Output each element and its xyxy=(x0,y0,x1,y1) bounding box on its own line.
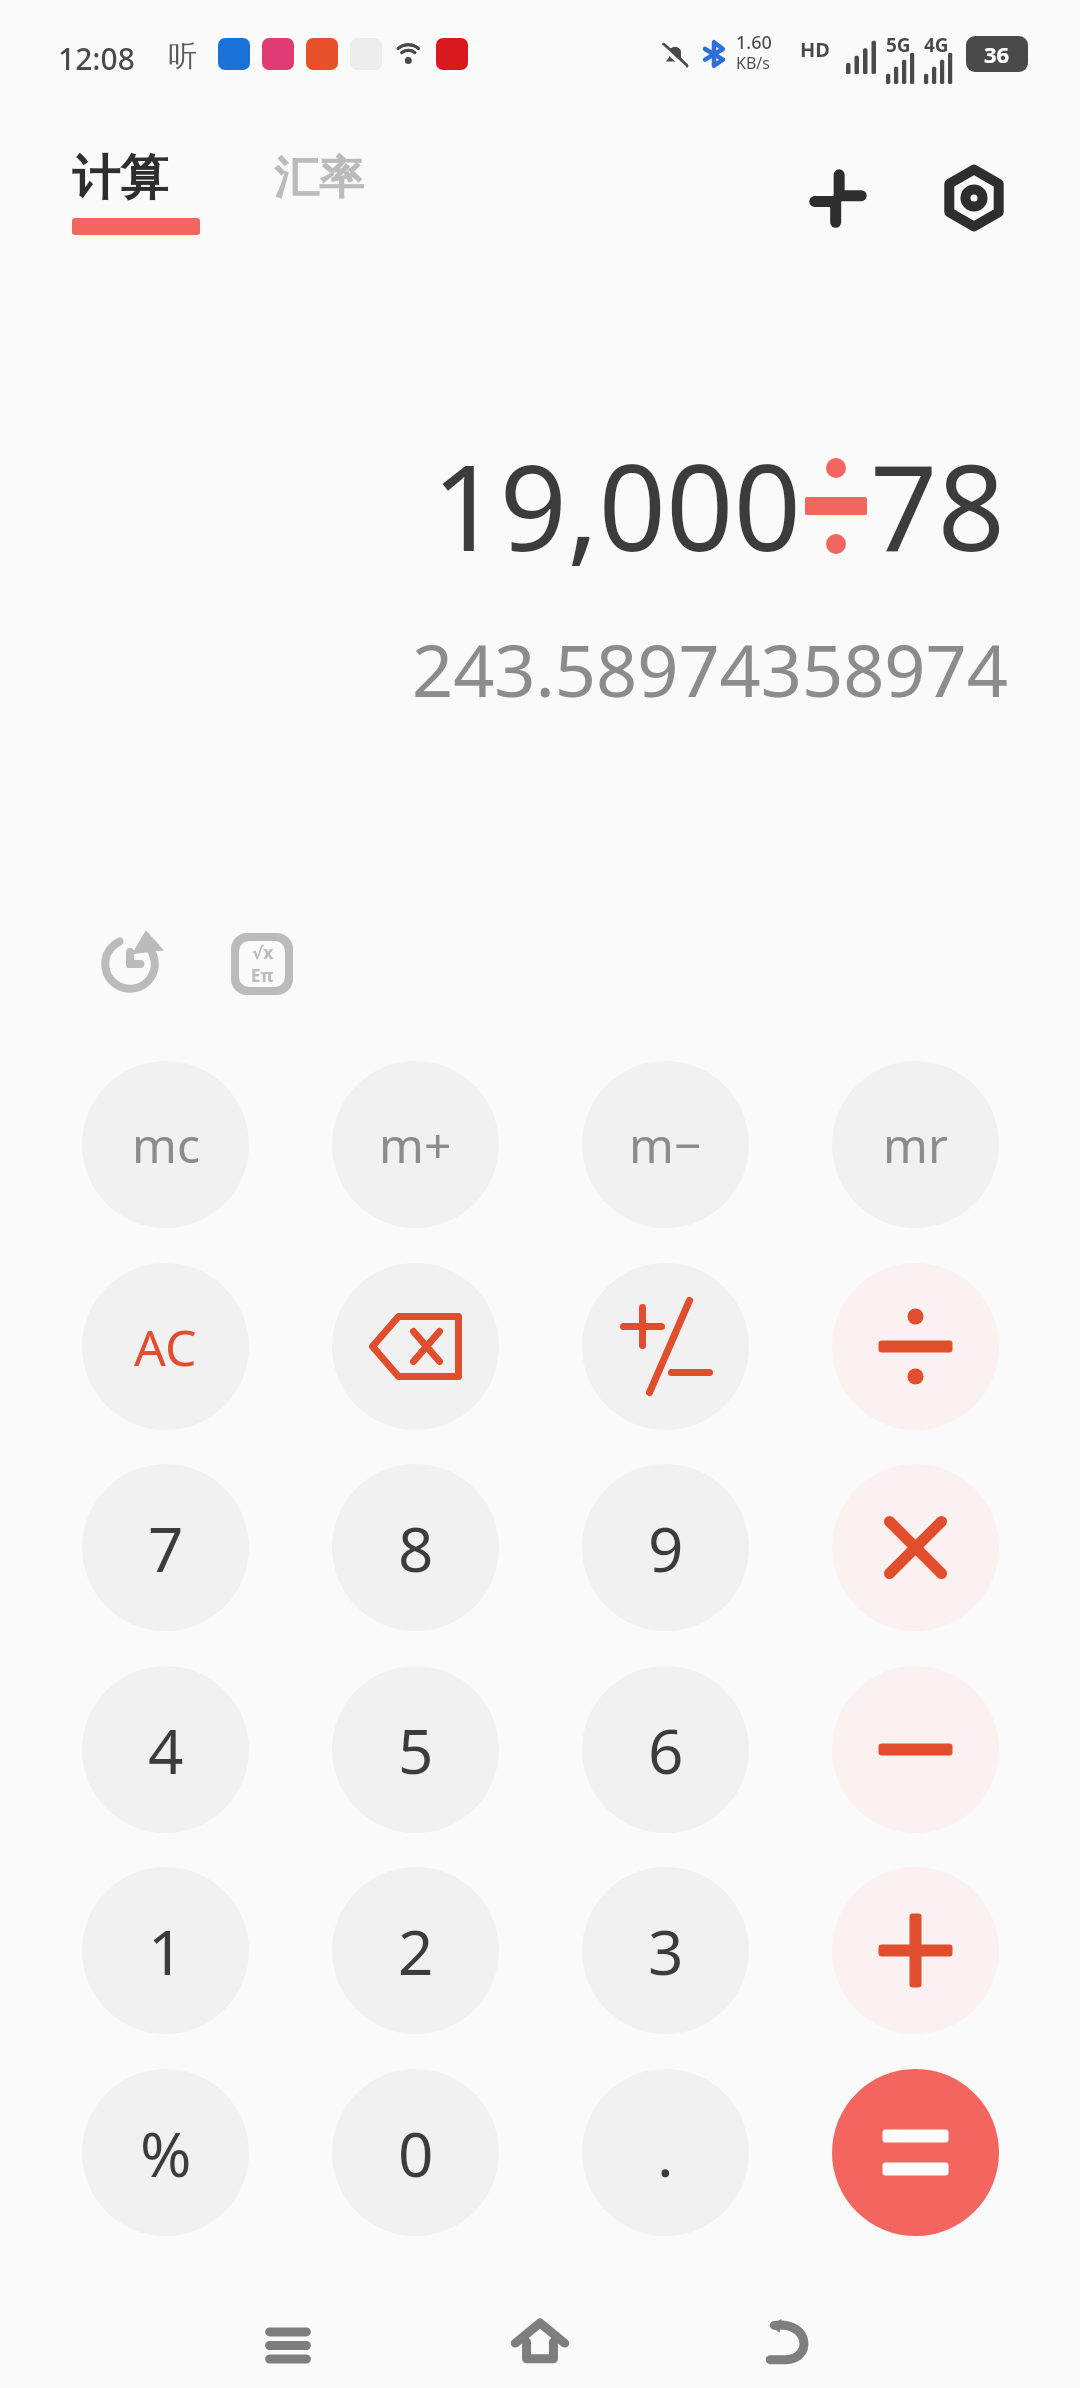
staticText: Eπ xyxy=(251,964,274,987)
staticText: 19,000 xyxy=(432,425,802,586)
button[interactable]: Recents xyxy=(228,2282,348,2388)
staticText: 1.60 xyxy=(736,30,772,55)
staticText: 3 xyxy=(648,1909,684,1993)
button[interactable]: 7 xyxy=(82,1464,249,1631)
staticText: 5 xyxy=(398,1708,434,1792)
button[interactable]: Multiply xyxy=(832,1464,999,1631)
staticText: . xyxy=(657,2111,674,2195)
button[interactable]: mc xyxy=(82,1061,249,1228)
button[interactable]: % xyxy=(82,2069,249,2236)
staticText: 0 xyxy=(398,2111,434,2195)
staticText: √x xyxy=(252,941,274,964)
staticText: 243.58974358974 xyxy=(412,620,1008,718)
staticText: HD xyxy=(800,36,830,63)
button[interactable]: 6 xyxy=(582,1666,749,1833)
button[interactable]: Back xyxy=(730,2282,850,2388)
button[interactable]: 9 xyxy=(582,1464,749,1631)
staticText: 计算 xyxy=(72,148,168,208)
button[interactable]: . xyxy=(582,2069,749,2236)
button[interactable]: 8 xyxy=(332,1464,499,1631)
button[interactable]: 2 xyxy=(332,1867,499,2034)
staticText: 4 xyxy=(148,1708,184,1792)
staticText: 9 xyxy=(648,1506,684,1590)
button[interactable]: m− xyxy=(582,1061,749,1228)
staticText: m+ xyxy=(379,1112,452,1177)
staticText: 36 xyxy=(984,39,1010,69)
button[interactable]: Scientific xyxy=(218,920,306,1008)
button[interactable]: Plus xyxy=(832,1867,999,2034)
staticText: KB/s xyxy=(736,52,770,74)
staticText: 5G xyxy=(886,32,911,58)
button[interactable]: Divide xyxy=(832,1263,999,1430)
staticText: 汇率 xyxy=(274,150,364,207)
button[interactable]: Minus xyxy=(832,1666,999,1833)
staticText: 7 xyxy=(148,1506,184,1590)
staticText: 4G xyxy=(924,32,949,58)
staticText: mr xyxy=(883,1112,948,1177)
button[interactable]: Equals xyxy=(832,2069,999,2236)
button[interactable]: Settings xyxy=(926,150,1022,246)
button[interactable]: 汇率 xyxy=(262,148,412,218)
staticText: 8 xyxy=(398,1506,434,1590)
staticText: % xyxy=(140,2111,192,2195)
button[interactable]: mr xyxy=(832,1061,999,1228)
button[interactable]: 5 xyxy=(332,1666,499,1833)
staticText: 6 xyxy=(648,1708,684,1792)
button[interactable]: 1 xyxy=(82,1867,249,2034)
staticText: 12:08 xyxy=(58,38,135,79)
staticText: 听 xyxy=(168,38,197,75)
button[interactable]: History xyxy=(86,920,174,1008)
button[interactable]: AC xyxy=(82,1263,249,1430)
staticText: AC xyxy=(134,1313,197,1381)
staticText: mc xyxy=(132,1112,200,1177)
button[interactable]: Expand xyxy=(790,150,886,246)
button[interactable]: m+ xyxy=(332,1061,499,1228)
button[interactable]: Backspace xyxy=(332,1263,499,1430)
button[interactable]: 3 xyxy=(582,1867,749,2034)
button[interactable]: 4 xyxy=(82,1666,249,1833)
button[interactable]: Plus minus xyxy=(582,1263,749,1430)
staticText: 78 xyxy=(870,425,1005,586)
staticText: m− xyxy=(629,1112,702,1177)
button[interactable]: 计算 xyxy=(56,148,201,240)
button[interactable]: Home xyxy=(480,2282,600,2388)
button[interactable]: 0 xyxy=(332,2069,499,2236)
staticText: 2 xyxy=(398,1909,434,1993)
staticText: 1 xyxy=(148,1909,184,1993)
